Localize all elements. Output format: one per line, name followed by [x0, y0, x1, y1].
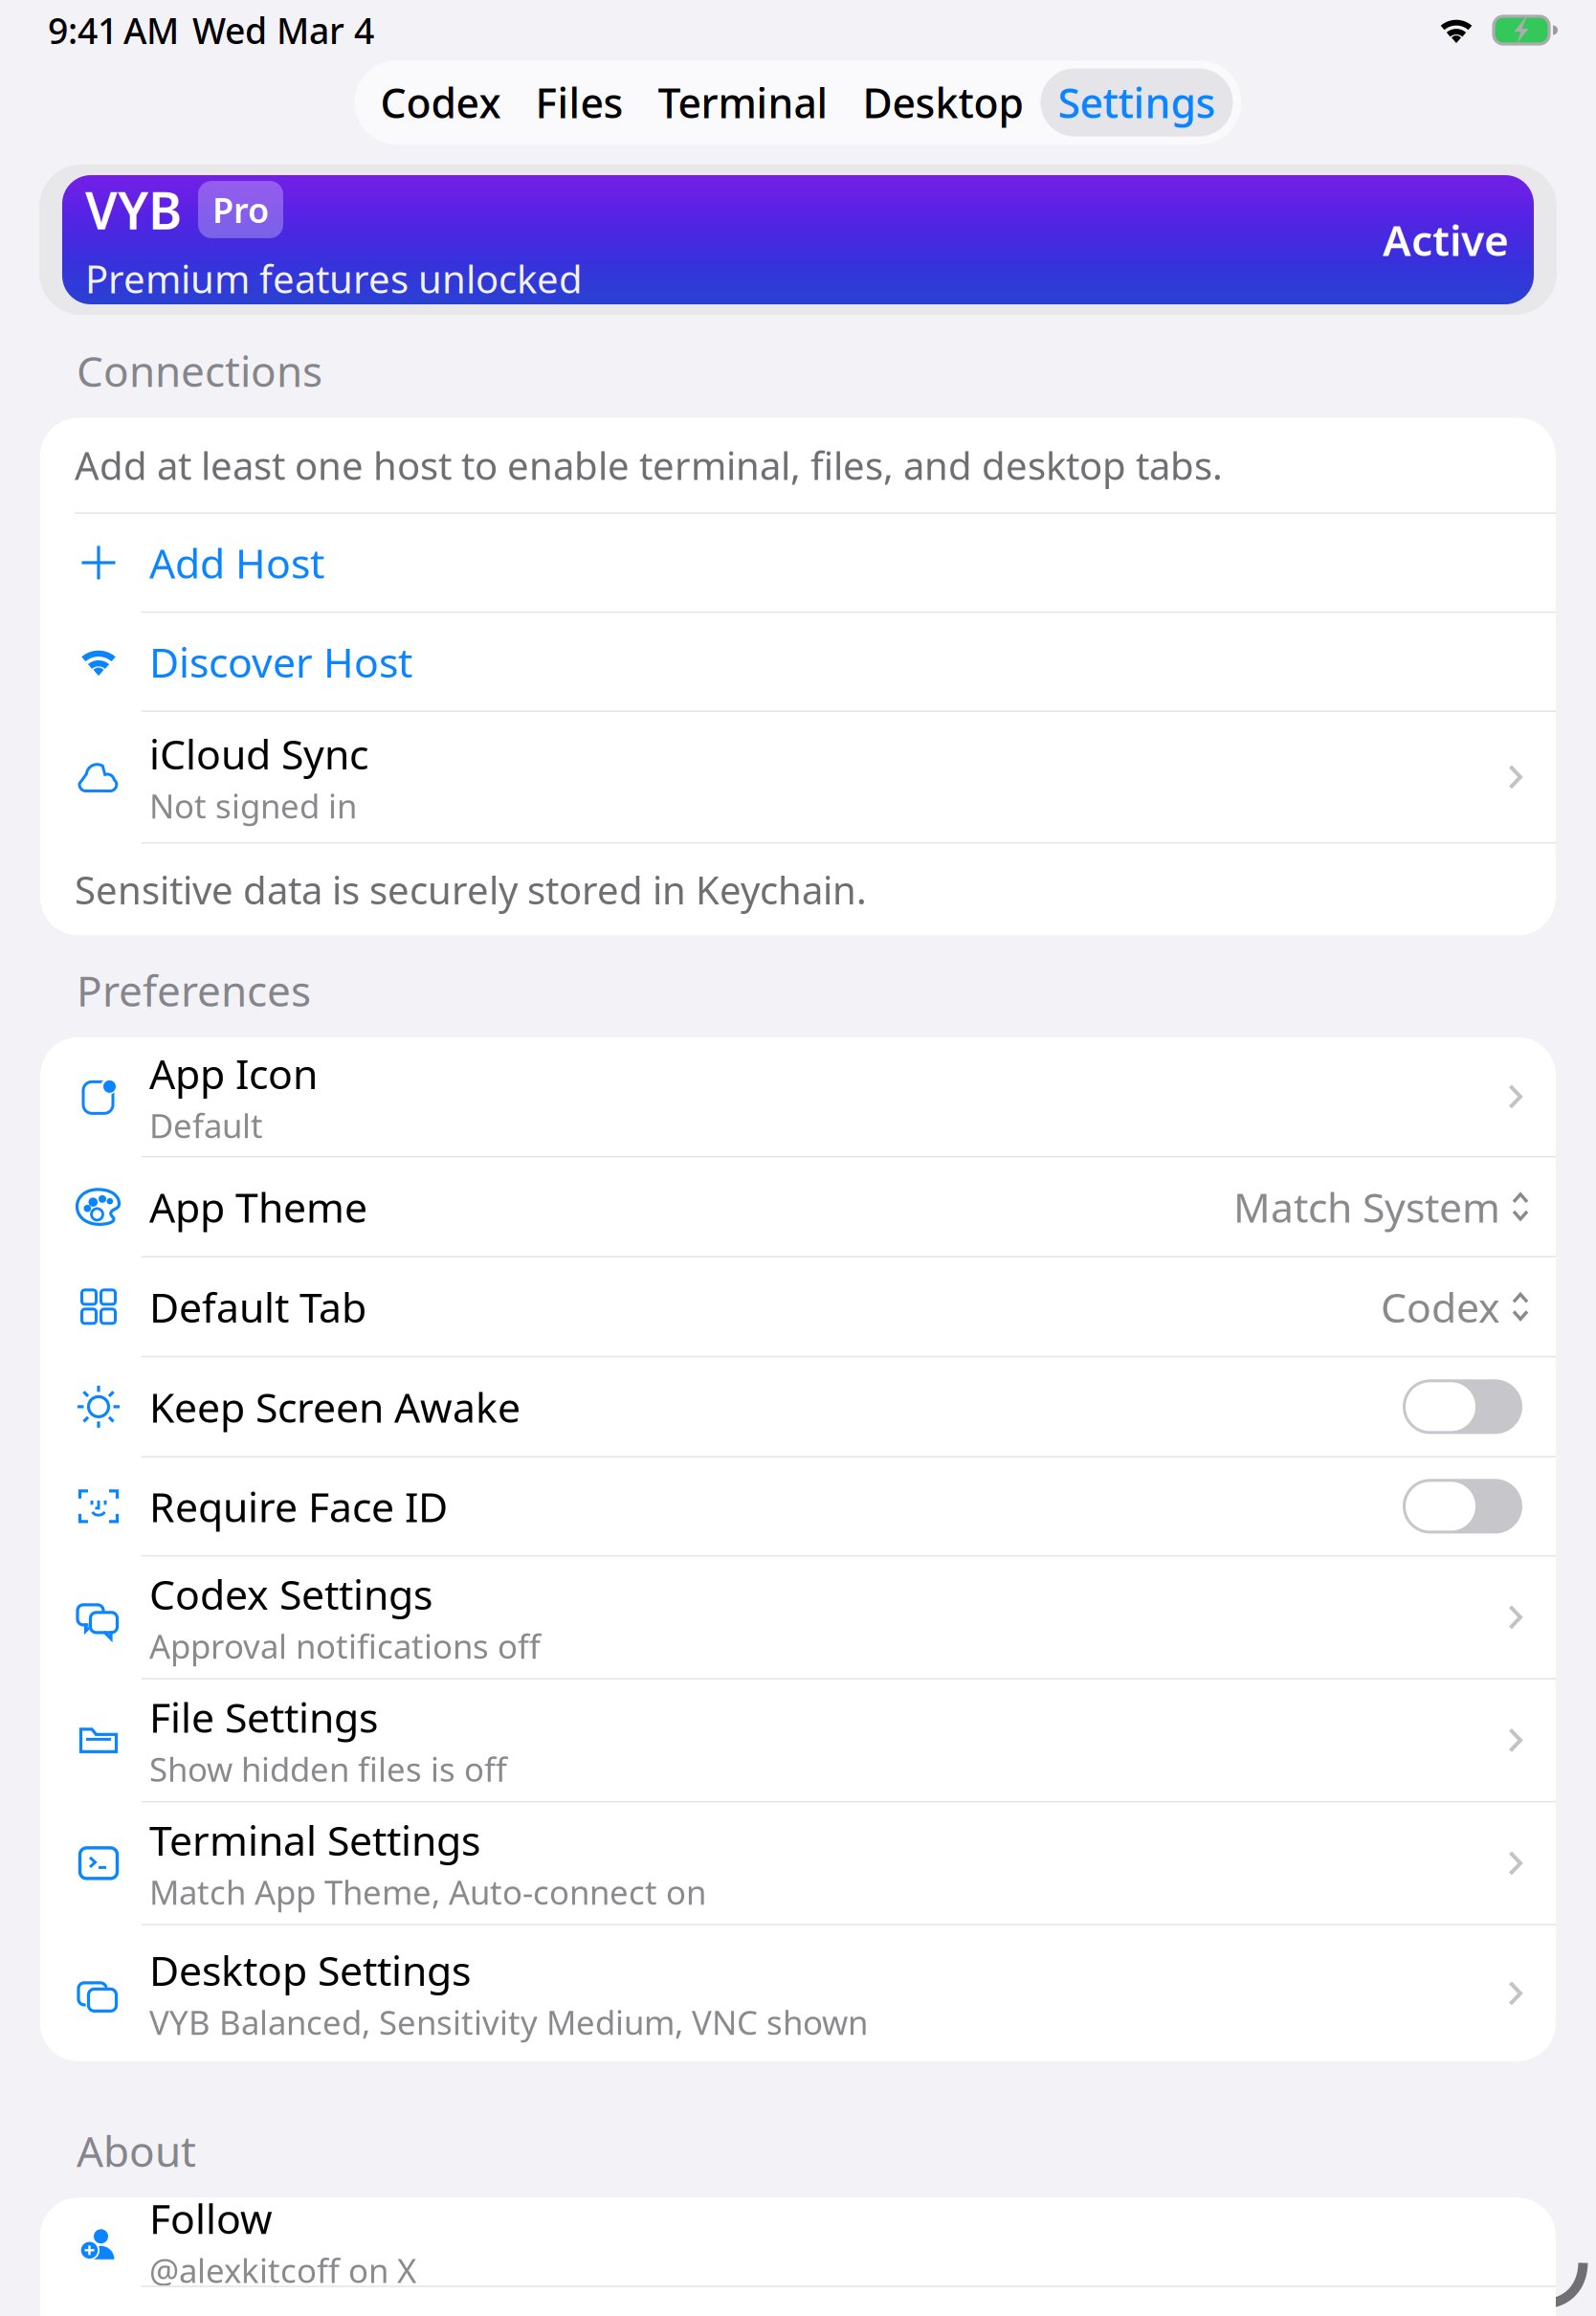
button[interactable]: Desktop — [845, 68, 1041, 136]
staticText: @alexkitcoff on X — [149, 2248, 416, 2292]
staticText: Codex — [380, 75, 501, 130]
staticText: Pro — [212, 187, 269, 232]
staticText: VYB Balanced, Sensitivity Medium, VNC sh… — [149, 2000, 868, 2044]
staticText: Settings — [1058, 75, 1216, 130]
button[interactable]: Discover Host — [40, 613, 1556, 710]
staticText: Follow — [149, 2191, 273, 2245]
staticText: Terminal — [658, 75, 828, 130]
staticText: Require Face ID — [149, 1479, 448, 1533]
button[interactable]: iCloud Sync — [40, 712, 1556, 842]
button[interactable]: Files — [518, 68, 641, 136]
staticText: Codex — [1381, 1280, 1500, 1334]
staticText: Preferences — [77, 962, 311, 1018]
staticText: Desktop — [863, 75, 1023, 130]
staticText: Keep Screen Awake — [149, 1380, 521, 1434]
button[interactable]: Terminal — [641, 68, 845, 136]
staticText: App Icon — [149, 1046, 318, 1100]
staticText: VYB — [85, 176, 182, 243]
button[interactable]: Settings — [1041, 68, 1233, 136]
staticText: Add at least one host to enable terminal… — [75, 440, 1223, 490]
staticText: Files — [535, 75, 623, 130]
button[interactable]: Keep Screen Awake — [40, 1357, 1556, 1456]
button[interactable]: VYB — [40, 165, 1556, 315]
button[interactable]: App Icon — [40, 1037, 1556, 1156]
staticText: Premium features unlocked — [85, 253, 583, 304]
staticText: Approval notifications off — [149, 1624, 541, 1668]
staticText: 9:41 AM — [48, 6, 179, 54]
staticText: Desktop Settings — [149, 1943, 471, 1997]
button[interactable]: File Settings — [40, 1679, 1556, 1801]
button[interactable]: Follow — [40, 2198, 1556, 2286]
staticText: Not signed in — [149, 784, 357, 828]
staticText: Connections — [77, 343, 322, 399]
button[interactable]: Add Host — [40, 514, 1556, 611]
button[interactable]: Desktop Settings — [40, 1925, 1556, 2061]
staticText: Discover Host — [149, 635, 412, 689]
staticText: Match App Theme, Auto-connect on — [149, 1870, 706, 1914]
staticText: Sensitive data is securely stored in Key… — [75, 864, 867, 915]
staticText: Default Tab — [149, 1280, 366, 1334]
staticText: Default — [149, 1103, 263, 1147]
button[interactable]: Codex Settings — [40, 1557, 1556, 1678]
staticText: Terminal Settings — [149, 1813, 480, 1867]
button[interactable]: App Theme — [40, 1157, 1556, 1256]
button[interactable]: Require Face ID — [40, 1457, 1556, 1555]
staticText: File Settings — [149, 1690, 378, 1744]
staticText: Show hidden files is off — [149, 1747, 507, 1791]
staticText: Codex Settings — [149, 1567, 432, 1621]
staticText: Match System — [1233, 1180, 1500, 1234]
button[interactable]: Terminal Settings — [40, 1802, 1556, 1924]
staticText: Wed Mar 4 — [192, 6, 374, 54]
button[interactable]: Codex — [363, 68, 518, 136]
staticText: About — [77, 2123, 196, 2178]
staticText: App Theme — [149, 1180, 367, 1234]
staticText: Add Host — [149, 536, 324, 590]
staticText: iCloud Sync — [149, 726, 368, 781]
staticText: Active — [1383, 212, 1509, 268]
button[interactable]: Default Tab — [40, 1257, 1556, 1356]
